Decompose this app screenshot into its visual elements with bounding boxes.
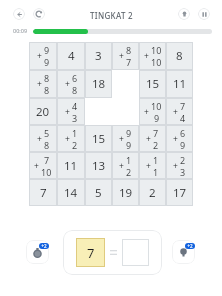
button[interactable]: 19 bbox=[112, 179, 139, 206]
button[interactable]: 2 bbox=[139, 179, 166, 206]
staticText: 2 bbox=[149, 185, 156, 201]
staticText: 9 bbox=[126, 139, 132, 151]
staticText: 15 bbox=[146, 76, 160, 92]
button[interactable]: + bbox=[166, 152, 193, 179]
button[interactable]: + bbox=[29, 152, 57, 179]
staticText: 8 bbox=[72, 84, 78, 96]
staticText: + bbox=[146, 160, 151, 172]
staticText: 1 bbox=[153, 154, 159, 166]
button[interactable]: + bbox=[112, 125, 139, 152]
staticText: +2 bbox=[41, 243, 47, 249]
staticText: 5 bbox=[44, 127, 50, 139]
staticText: 15 bbox=[92, 131, 106, 147]
button[interactable]: Refresh bbox=[33, 8, 45, 20]
button[interactable]: 18 bbox=[85, 70, 112, 98]
staticText: 1 bbox=[153, 166, 159, 178]
staticText: 2 bbox=[180, 154, 186, 166]
button[interactable]: 15 bbox=[139, 70, 166, 98]
staticText: + bbox=[144, 50, 149, 62]
button[interactable]: 5 bbox=[85, 179, 112, 206]
staticText: 11 bbox=[173, 76, 187, 92]
button[interactable]: Pause bbox=[198, 8, 210, 20]
button[interactable]: + bbox=[29, 42, 57, 70]
button[interactable]: 15 bbox=[85, 125, 112, 152]
staticText: + bbox=[119, 50, 124, 62]
staticText: + bbox=[173, 106, 178, 118]
staticText: 4 bbox=[180, 112, 186, 124]
staticText: 19 bbox=[119, 185, 133, 201]
button[interactable]: + bbox=[139, 125, 166, 152]
button[interactable]: + bbox=[57, 70, 85, 98]
staticText: + bbox=[65, 133, 70, 145]
staticText: + bbox=[173, 133, 178, 145]
staticText: 9 bbox=[154, 112, 160, 124]
staticText: 4 bbox=[68, 48, 75, 64]
button[interactable]: + bbox=[166, 125, 193, 152]
staticText: 7 bbox=[126, 56, 132, 68]
staticText: + bbox=[37, 78, 42, 90]
staticText: 8 bbox=[176, 48, 183, 64]
button[interactable]: 11 bbox=[57, 152, 85, 179]
button[interactable]: 14 bbox=[57, 179, 85, 206]
button[interactable]: Hint bbox=[178, 8, 190, 20]
staticText: 6 bbox=[72, 72, 78, 84]
staticText: + bbox=[37, 133, 42, 145]
staticText: TINGKAT 2 bbox=[90, 10, 133, 21]
staticText: + bbox=[119, 133, 124, 145]
staticText: 4 bbox=[72, 100, 78, 112]
staticText: 14 bbox=[64, 185, 78, 201]
button[interactable]: Hint bbox=[172, 240, 195, 264]
button[interactable]: 11 bbox=[166, 70, 193, 98]
staticText: 8 bbox=[44, 139, 50, 151]
button[interactable]: Back bbox=[13, 8, 25, 20]
staticText: 18 bbox=[92, 76, 106, 92]
button[interactable]: + bbox=[57, 98, 85, 125]
staticText: + bbox=[119, 160, 124, 172]
staticText: 10 bbox=[151, 56, 162, 68]
button[interactable]: + bbox=[57, 125, 85, 152]
staticText: 11 bbox=[64, 158, 78, 174]
staticText: 3 bbox=[72, 112, 78, 124]
staticText: 5 bbox=[95, 185, 102, 201]
button[interactable]: + bbox=[139, 42, 166, 70]
button[interactable]: + bbox=[139, 152, 166, 179]
button[interactable]: 17 bbox=[166, 179, 193, 206]
button[interactable]: + bbox=[112, 42, 139, 70]
staticText: + bbox=[144, 106, 149, 118]
button[interactable]: 20 bbox=[29, 98, 57, 125]
staticText: 00:09 bbox=[13, 27, 28, 34]
button[interactable]: + bbox=[29, 70, 57, 98]
staticText: 7 bbox=[153, 127, 159, 139]
staticText: 7 bbox=[87, 244, 95, 262]
staticText: 10 bbox=[151, 100, 162, 112]
staticText: 7 bbox=[44, 154, 50, 166]
staticText: + bbox=[34, 160, 39, 172]
staticText: 3 bbox=[180, 166, 186, 178]
button[interactable]: + bbox=[166, 98, 193, 125]
staticText: 17 bbox=[173, 185, 187, 201]
button[interactable]: 8 bbox=[166, 42, 193, 70]
staticText: 3 bbox=[95, 48, 102, 64]
staticText: 6 bbox=[180, 127, 186, 139]
staticText: 2 bbox=[72, 139, 78, 151]
staticText: 20 bbox=[36, 104, 50, 120]
staticText: 8 bbox=[44, 84, 50, 96]
button[interactable]: + bbox=[139, 98, 166, 125]
staticText: 2 bbox=[126, 166, 132, 178]
button[interactable]: 4 bbox=[57, 42, 85, 70]
staticText: 10 bbox=[151, 44, 162, 56]
staticText: 8 bbox=[44, 72, 50, 84]
button[interactable]: 13 bbox=[85, 152, 112, 179]
button[interactable]: 7 bbox=[29, 179, 57, 206]
button[interactable]: 3 bbox=[85, 42, 112, 70]
staticText: 7 bbox=[40, 185, 47, 201]
button[interactable]: + bbox=[29, 125, 57, 152]
button[interactable]: + bbox=[112, 152, 139, 179]
staticText: 9 bbox=[44, 56, 50, 68]
staticText: 10 bbox=[41, 166, 52, 178]
button[interactable]: 7 bbox=[63, 230, 162, 275]
button[interactable]: Add time bbox=[26, 240, 49, 264]
